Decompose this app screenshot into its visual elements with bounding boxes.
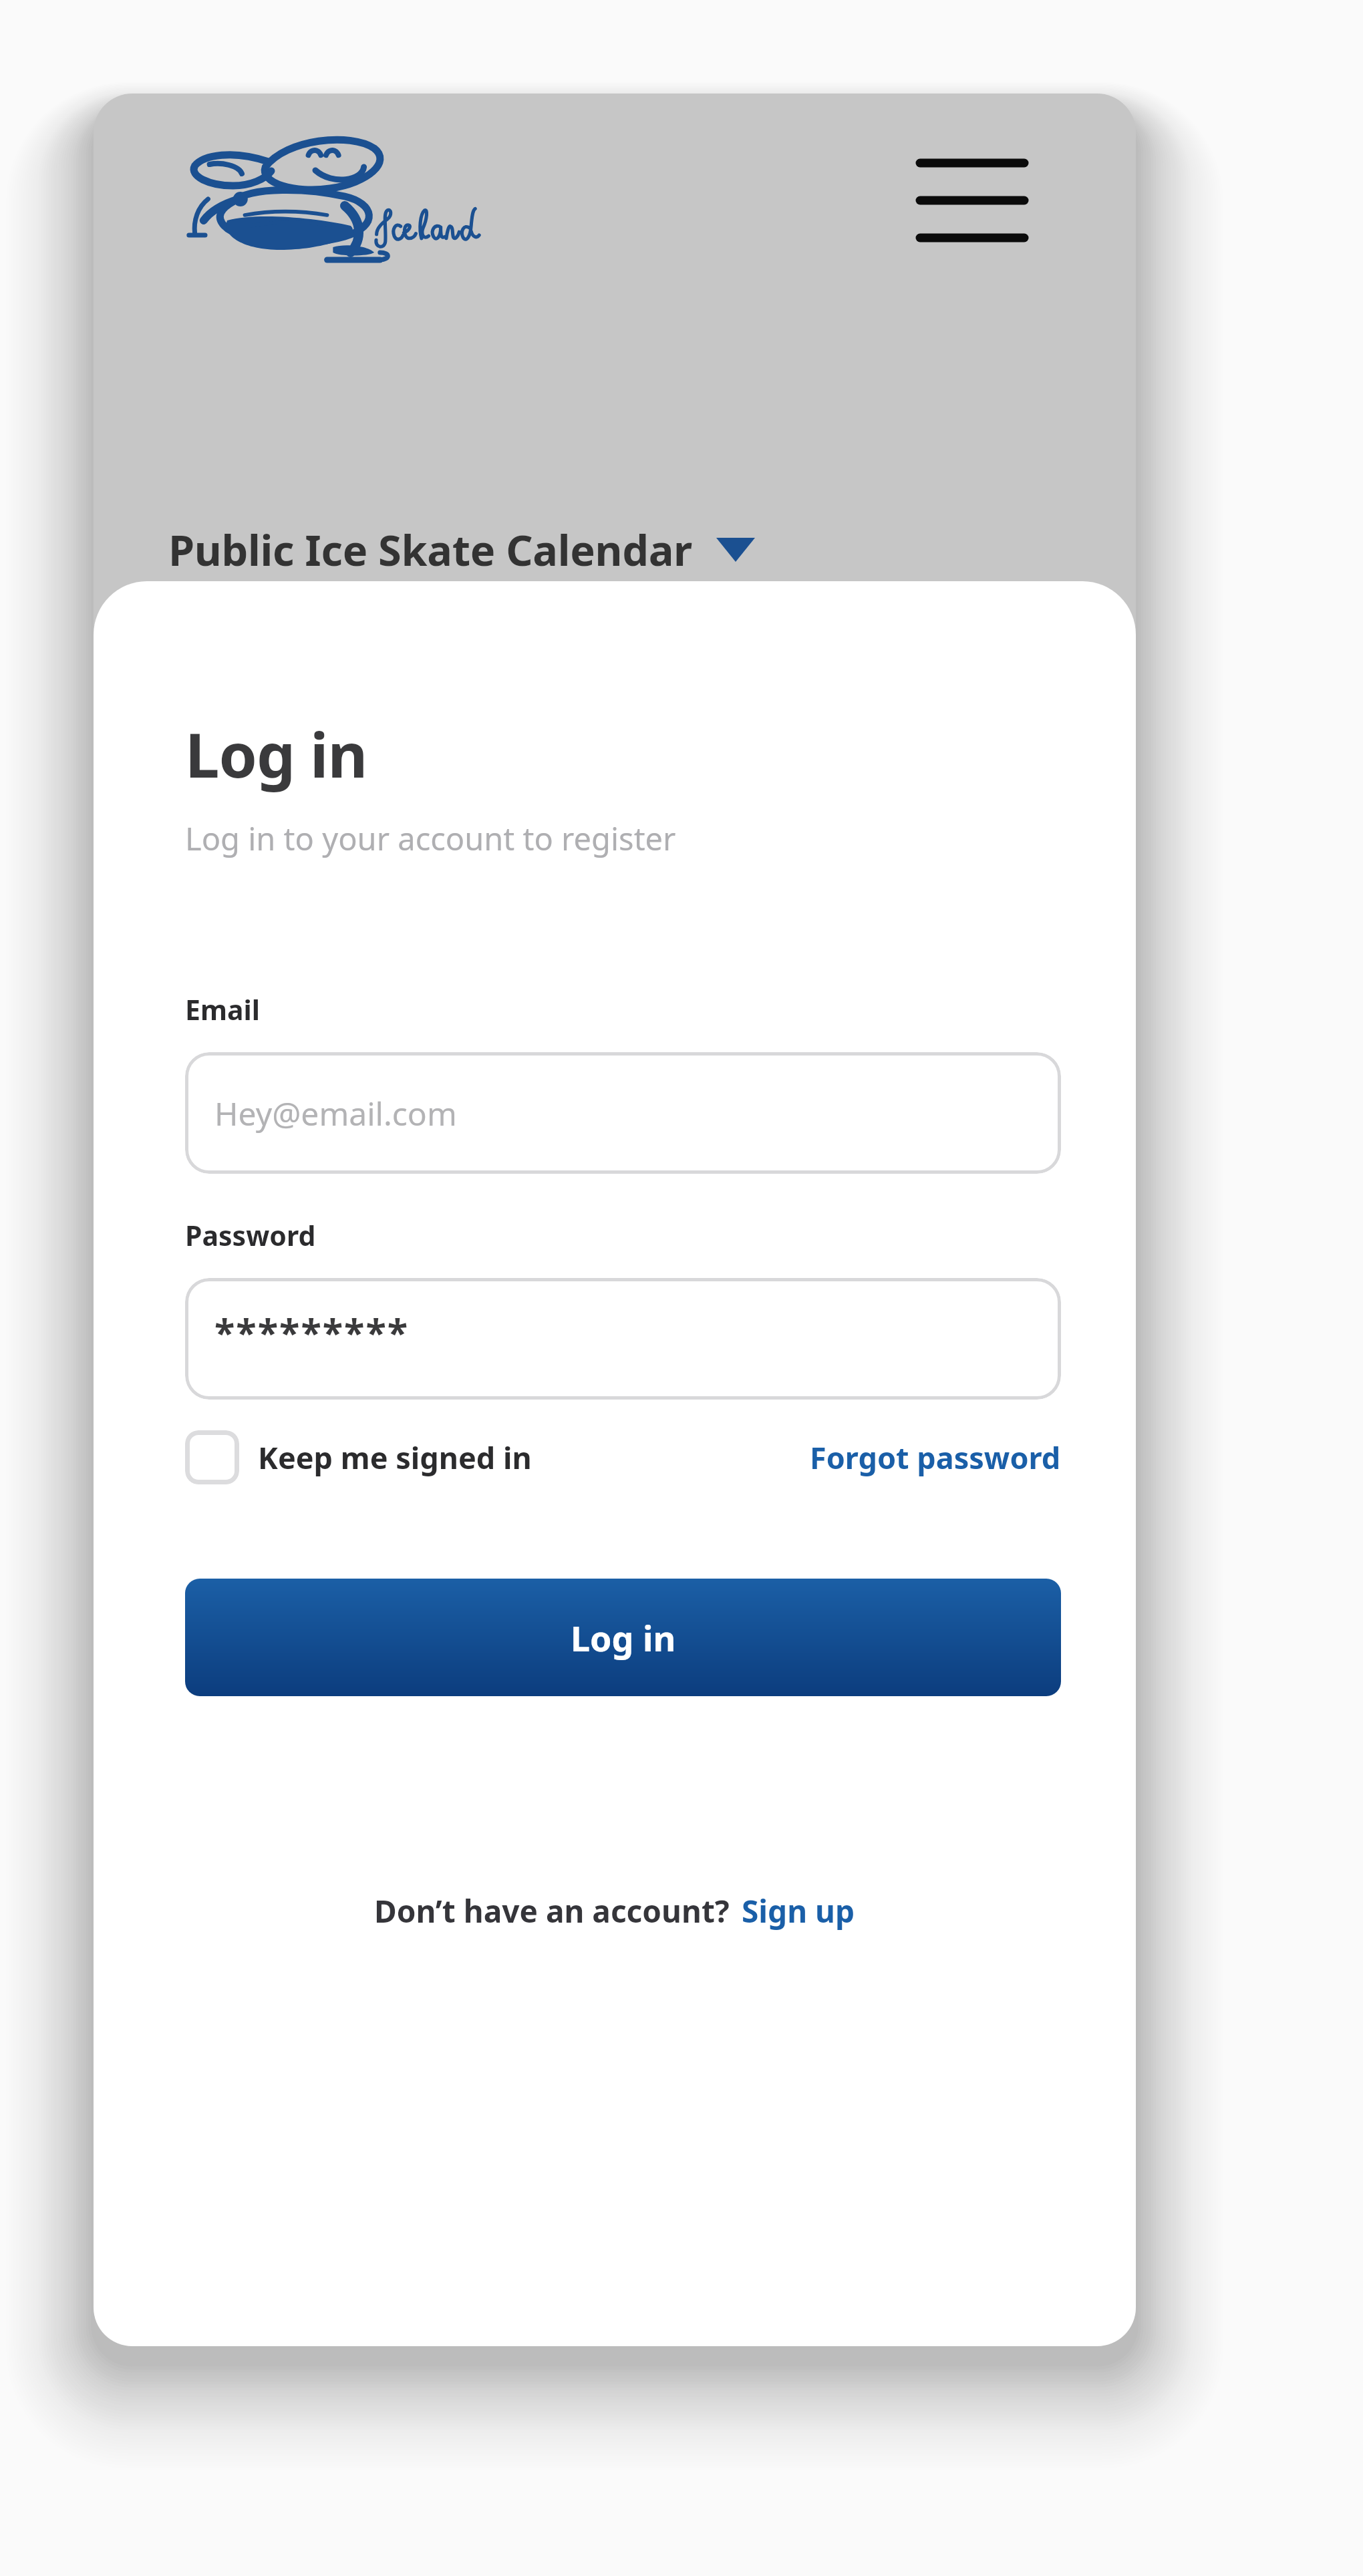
staticText: Password xyxy=(185,1217,316,1254)
staticText: Sign up xyxy=(742,1890,855,1932)
staticText: Public Ice Skate Calendar xyxy=(168,521,692,579)
button[interactable]: Public Ice Skate Calendar xyxy=(168,500,755,600)
button[interactable]: Forgot password xyxy=(810,1437,1061,1478)
staticText: Log in to your account to register xyxy=(185,817,676,860)
staticText: Forgot password xyxy=(810,1437,1061,1478)
staticText: Hey@email.com xyxy=(214,1092,457,1135)
staticText: ********* xyxy=(214,1306,410,1357)
button[interactable]: Menu xyxy=(912,140,1032,261)
staticText: Log in xyxy=(185,712,367,796)
staticText: Email xyxy=(185,991,260,1028)
button[interactable]: Hey@email.com xyxy=(185,1052,1061,1174)
staticText: Keep me signed in xyxy=(258,1437,532,1478)
staticText: Don’t have an account? xyxy=(374,1890,730,1932)
button[interactable]: ********* xyxy=(185,1278,1061,1400)
staticText: Log in xyxy=(571,1614,676,1661)
button[interactable]: Keep me signed in xyxy=(185,1430,532,1484)
button[interactable]: Iceland home xyxy=(168,132,462,266)
button[interactable]: Log in xyxy=(185,1579,1061,1696)
button[interactable]: Sign up xyxy=(742,1890,855,1932)
